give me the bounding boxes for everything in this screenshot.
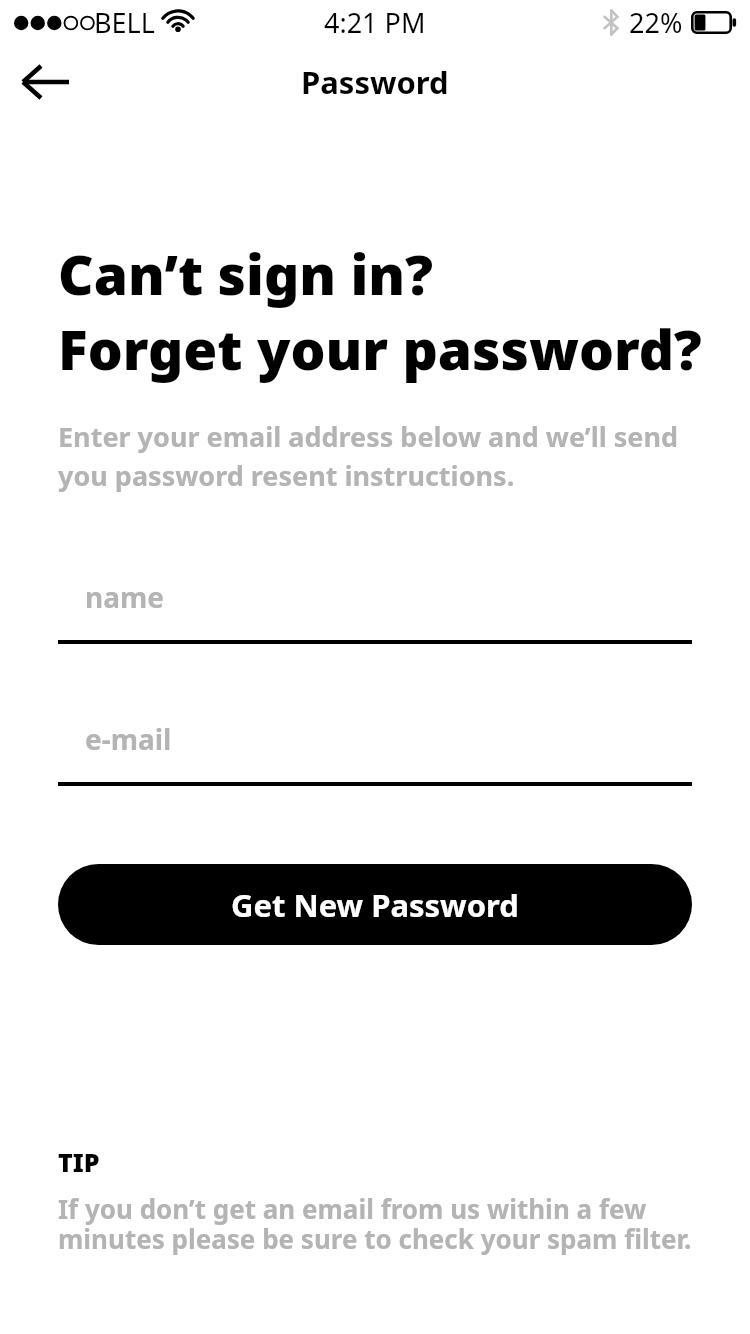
staticText: Enter your email address below and we’ll… <box>58 418 694 494</box>
staticText: 22% <box>629 4 683 41</box>
staticText: Forget your password? <box>58 311 702 386</box>
staticText: TIP <box>58 1145 100 1179</box>
button[interactable]: e-mail <box>58 720 692 786</box>
button[interactable]: Get New Password <box>58 864 692 945</box>
staticText: name <box>85 578 164 616</box>
staticText: Can’t sign in? <box>58 236 433 311</box>
staticText: BELL <box>94 4 155 41</box>
button[interactable]: Back <box>10 46 82 118</box>
staticText: Get New Password <box>231 884 519 926</box>
staticText: Password <box>301 61 449 103</box>
staticText: 4:21 PM <box>324 4 426 41</box>
button[interactable]: name <box>58 578 692 644</box>
staticText: If you don’t get an email from us within… <box>58 1191 698 1257</box>
staticText: e-mail <box>85 720 172 758</box>
